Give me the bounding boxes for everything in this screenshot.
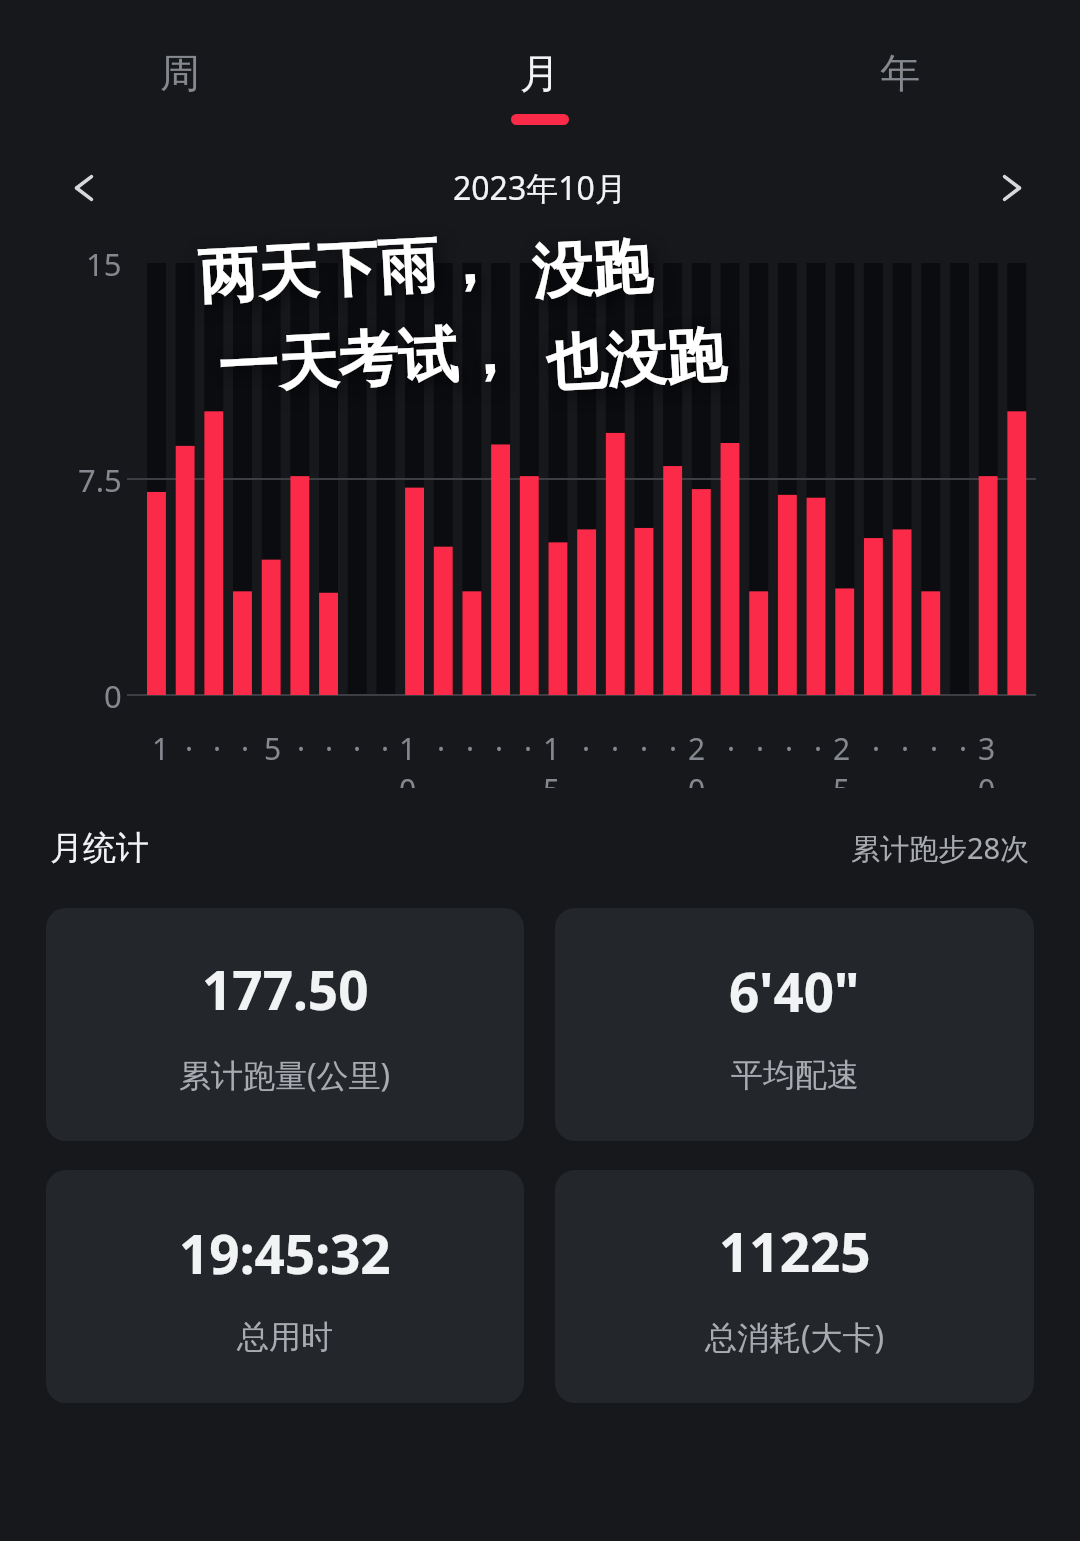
staticText: 1 bbox=[152, 728, 170, 769]
staticText: · bbox=[466, 728, 475, 769]
staticText: · bbox=[297, 728, 306, 769]
staticText: 11225 bbox=[719, 1215, 871, 1287]
button[interactable]: Previous month bbox=[46, 150, 122, 226]
staticText: 177.50 bbox=[202, 953, 369, 1025]
staticText: 6'40" bbox=[729, 955, 860, 1027]
staticText: · bbox=[901, 728, 910, 769]
button[interactable]: 177.50 bbox=[46, 908, 524, 1141]
staticText: · bbox=[872, 728, 881, 769]
staticText: 没跑 bbox=[530, 229, 654, 311]
staticText: 25 bbox=[833, 728, 862, 788]
button[interactable]: 19:45:32 bbox=[46, 1170, 524, 1403]
staticText: · bbox=[611, 728, 620, 769]
staticText: 周 bbox=[160, 48, 200, 98]
button[interactable]: 6'40" bbox=[555, 908, 1034, 1141]
staticText: 15 bbox=[86, 243, 122, 285]
staticText: 也没跑 bbox=[544, 317, 728, 403]
staticText: · bbox=[241, 728, 250, 769]
staticText: · bbox=[814, 728, 823, 769]
staticText: · bbox=[495, 728, 504, 769]
staticText: · bbox=[930, 728, 939, 769]
staticText: · bbox=[353, 728, 362, 769]
staticText: 0 bbox=[104, 675, 122, 717]
button[interactable]: Next month bbox=[974, 150, 1050, 226]
staticText: 2023年10月 bbox=[453, 166, 627, 210]
button[interactable]: 周 bbox=[0, 0, 360, 148]
staticText: 一天考试， bbox=[216, 314, 520, 406]
staticText: 5 bbox=[264, 728, 282, 769]
staticText: · bbox=[727, 728, 736, 769]
staticText: · bbox=[785, 728, 794, 769]
button[interactable]: 11225 bbox=[555, 1170, 1034, 1403]
staticText: 总用时 bbox=[237, 1317, 333, 1357]
staticText: · bbox=[669, 728, 678, 769]
staticText: 月统计 bbox=[50, 827, 149, 869]
staticText: 20 bbox=[688, 728, 717, 788]
staticText: 两天下雨， bbox=[196, 224, 500, 316]
staticText: · bbox=[185, 728, 194, 769]
staticText: 7.5 bbox=[78, 459, 122, 501]
staticText: 年 bbox=[880, 48, 920, 98]
button[interactable]: 年 bbox=[720, 0, 1080, 148]
staticText: · bbox=[524, 728, 533, 769]
staticText: 月 bbox=[520, 48, 560, 98]
staticText: · bbox=[437, 728, 446, 769]
staticText: · bbox=[959, 728, 968, 769]
staticText: · bbox=[756, 728, 765, 769]
staticText: 30 bbox=[978, 728, 1007, 788]
staticText: 平均配速 bbox=[731, 1055, 859, 1095]
staticText: 总消耗(大卡) bbox=[705, 1315, 885, 1359]
button[interactable]: 月 bbox=[360, 0, 720, 148]
staticText: · bbox=[582, 728, 591, 769]
staticText: 累计跑步28次 bbox=[851, 828, 1030, 868]
staticText: · bbox=[640, 728, 649, 769]
staticText: · bbox=[381, 728, 390, 769]
staticText: 累计跑量(公里) bbox=[179, 1053, 391, 1097]
staticText: 15 bbox=[543, 728, 572, 788]
staticText: 19:45:32 bbox=[179, 1217, 391, 1289]
staticText: · bbox=[213, 728, 222, 769]
staticText: · bbox=[325, 728, 334, 769]
staticText: 10 bbox=[399, 728, 427, 788]
